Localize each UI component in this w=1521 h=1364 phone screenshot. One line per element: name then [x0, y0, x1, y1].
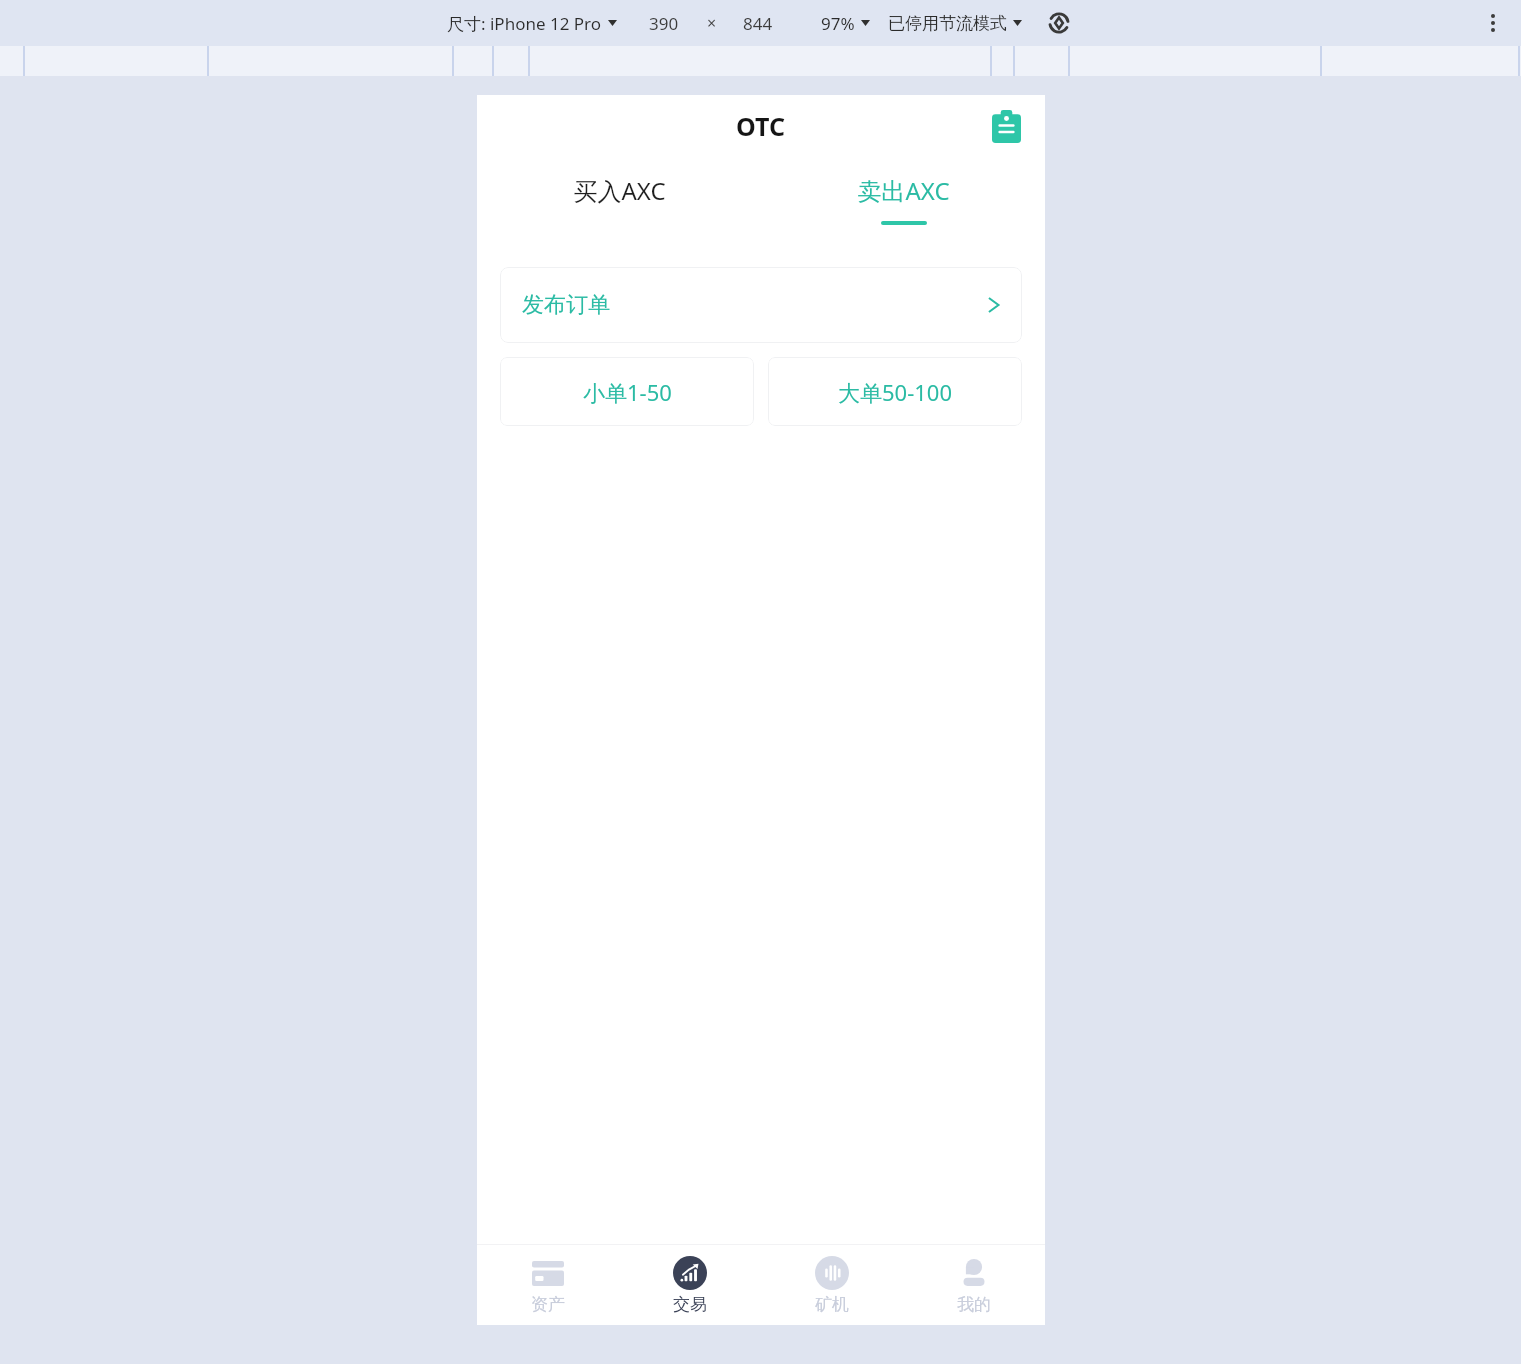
button[interactable]: 小单1-50	[500, 357, 754, 426]
staticText: 大单50-100	[838, 377, 953, 407]
button[interactable]: Miner	[761, 1245, 903, 1325]
button[interactable]: 卖出AXC	[761, 157, 1045, 242]
button[interactable]: 买入AXC	[477, 157, 761, 242]
staticText: 小单1-50	[583, 377, 672, 407]
staticText: 交易	[673, 1294, 707, 1315]
staticText: 已停用节流模式	[888, 13, 1007, 34]
button[interactable]: Rotate device	[1044, 8, 1074, 38]
staticText: 97%	[821, 12, 855, 35]
staticText: 卖出AXC	[857, 174, 950, 207]
staticText: OTC	[736, 109, 786, 143]
button[interactable]: 发布订单	[500, 267, 1022, 343]
button[interactable]: 大单50-100	[768, 357, 1022, 426]
button[interactable]: More options	[1479, 9, 1507, 37]
staticText: 买入AXC	[573, 174, 666, 207]
button[interactable]: Assets	[477, 1245, 619, 1325]
staticText: 390	[649, 12, 679, 35]
button[interactable]: My orders	[985, 105, 1027, 147]
staticText: 我的	[957, 1294, 991, 1315]
staticText: 发布订单	[522, 291, 610, 319]
staticText: 尺寸: iPhone 12 Pro	[447, 12, 602, 35]
staticText: 矿机	[815, 1294, 849, 1315]
staticText: ×	[707, 12, 717, 34]
button[interactable]: Trade	[619, 1245, 761, 1325]
button[interactable]: Profile	[903, 1245, 1045, 1325]
staticText: 844	[743, 12, 773, 35]
staticText: 资产	[531, 1294, 565, 1315]
